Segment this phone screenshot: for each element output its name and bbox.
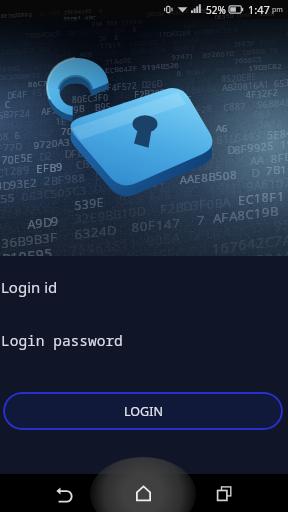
staticText: 1:47 [248, 2, 270, 17]
button[interactable]: Home [119, 474, 167, 512]
button[interactable]: Login id [0, 270, 288, 304]
button[interactable]: Back [40, 477, 88, 512]
staticText: LOGIN [124, 403, 163, 420]
staticText: 52% [206, 3, 226, 17]
button[interactable]: Login password [0, 323, 288, 357]
button[interactable]: LOGIN [3, 392, 283, 430]
button[interactable]: Recent apps [200, 474, 248, 512]
staticText: pm [272, 5, 283, 15]
staticText: Login password [1, 330, 123, 350]
staticText: Login id [1, 277, 58, 297]
